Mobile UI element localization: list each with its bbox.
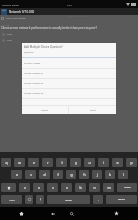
staticText: Question: [24, 51, 34, 54]
button[interactable]: Favorites: [110, 207, 122, 220]
staticText: Question 1: [1, 24, 11, 27]
staticText: ?123: [9, 198, 15, 201]
staticText: 7:27: [67, 3, 72, 6]
button[interactable]: Search: [66, 207, 78, 220]
button[interactable]: n: [89, 183, 100, 192]
staticText: m: [107, 185, 111, 190]
staticText: Add Multiple Choice Question?: [24, 45, 63, 49]
button[interactable]: u: [84, 158, 95, 167]
staticText: k: [109, 172, 111, 177]
staticText: o: [116, 160, 119, 165]
staticText: Done: [90, 109, 96, 112]
staticText: Wrong Answer #3: [24, 92, 44, 95]
staticText: f: [57, 172, 59, 177]
staticText: n: [93, 185, 96, 190]
button[interactable]: v: [61, 183, 72, 192]
button[interactable]: Wrong Answer #2: [22, 79, 116, 88]
button[interactable]: Done: [69, 106, 116, 114]
button[interactable]: c: [47, 183, 58, 192]
button[interactable]: d: [39, 170, 50, 179]
button[interactable]: Delete: [117, 183, 137, 192]
button[interactable]: b: [75, 183, 86, 192]
button[interactable]: y: [70, 158, 81, 167]
button[interactable]: ?123: [1, 195, 22, 204]
button[interactable]: Back: [47, 207, 59, 220]
staticText: c: [52, 185, 54, 190]
staticText: y: [75, 160, 77, 165]
button[interactable]: Voice input: [36, 195, 44, 204]
staticText: Correct Answer: [24, 62, 41, 65]
button[interactable]: a: [11, 170, 22, 179]
button[interactable]: Correct Answer: [22, 59, 116, 68]
staticText: w: [18, 160, 21, 165]
staticText: p: [130, 160, 133, 165]
button[interactable]: l: [118, 170, 128, 179]
button[interactable]: Return: [106, 195, 137, 204]
button[interactable]: s: [25, 170, 36, 179]
staticText: a: [16, 172, 18, 177]
staticText: Network 9/10-030: [9, 10, 35, 14]
button[interactable]: f: [53, 170, 63, 179]
button[interactable]: Home: [14, 207, 28, 220]
button[interactable]: h: [79, 170, 89, 179]
staticText: q: [5, 160, 8, 165]
staticText: e: [33, 160, 35, 165]
button[interactable]: Question: [22, 48, 116, 57]
button[interactable]: Emoji: [25, 195, 33, 204]
button[interactable]: t: [56, 158, 67, 167]
staticText: i: [103, 160, 104, 165]
staticText: Wrong Answer #2: [24, 82, 44, 85]
button[interactable]: m: [103, 183, 114, 192]
staticText: Adrian's Kindle: [2, 3, 19, 6]
staticText: Space: [65, 198, 72, 201]
staticText: True: [7, 39, 12, 42]
button[interactable]: x: [33, 183, 44, 192]
staticText: False: [7, 33, 13, 36]
staticText: .: [98, 198, 99, 202]
staticText: d: [43, 172, 46, 177]
staticText: Multi Choice Review: [6, 17, 26, 20]
staticText: Return: [118, 198, 125, 201]
staticText: b: [79, 185, 82, 190]
staticText: Client-server network performance is usu…: [1, 26, 97, 30]
button[interactable]: Space: [47, 195, 90, 204]
button[interactable]: Shift: [1, 183, 16, 192]
button[interactable]: e: [28, 158, 39, 167]
staticText: r: [47, 160, 49, 165]
button[interactable]: w: [14, 158, 25, 167]
button[interactable]: i: [98, 158, 109, 167]
button[interactable]: k: [105, 170, 115, 179]
button[interactable]: Cancel: [22, 106, 68, 114]
staticText: l: [123, 172, 124, 177]
staticText: h: [83, 172, 86, 177]
staticText: s: [30, 172, 32, 177]
staticText: g: [70, 172, 73, 177]
staticText: Wrong Answer #1: [24, 72, 44, 75]
staticText: Cancel: [41, 109, 49, 112]
staticText: t: [61, 160, 63, 165]
button[interactable]: Wrong Answer #3: [22, 89, 116, 98]
button[interactable]: p: [126, 158, 137, 167]
staticText: v: [66, 185, 68, 190]
button[interactable]: Wrong Answer #1: [22, 69, 116, 78]
button[interactable]: j: [92, 170, 102, 179]
button[interactable]: q: [1, 158, 11, 167]
button[interactable]: g: [66, 170, 76, 179]
staticText: u: [88, 160, 91, 165]
staticText: x: [38, 185, 40, 190]
button[interactable]: r: [42, 158, 53, 167]
button[interactable]: o: [112, 158, 123, 167]
staticText: j: [97, 172, 98, 177]
button[interactable]: z: [19, 183, 30, 192]
staticText: Delete: [124, 186, 131, 189]
button[interactable]: .: [93, 195, 103, 204]
staticText: z: [24, 185, 26, 190]
